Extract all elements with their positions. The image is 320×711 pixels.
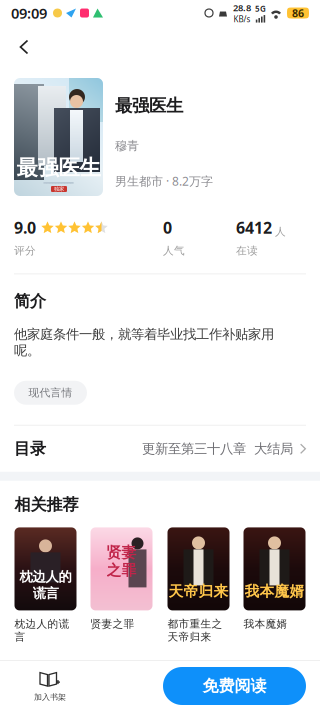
- button[interactable]: 加入书架: [10, 663, 90, 708]
- staticText: 我本魔婿: [243, 617, 287, 630]
- staticText: 最强医生: [115, 95, 183, 116]
- button[interactable]: Back: [7, 26, 41, 68]
- staticText: 相关推荐: [14, 495, 78, 514]
- staticText: 免费阅读: [202, 676, 266, 696]
- staticText: 我本魔婿: [244, 582, 304, 600]
- staticText: 评分: [14, 244, 36, 257]
- staticText: 枕边人的: [19, 569, 71, 585]
- staticText: 0: [163, 217, 172, 238]
- staticText: 更新至第三十八章 大结局: [142, 441, 293, 457]
- button[interactable]: 免费阅读: [163, 667, 306, 705]
- staticText: KB/s: [233, 14, 250, 24]
- staticText: 86: [292, 6, 304, 20]
- staticText: 男生都市 · 8.2万字: [115, 173, 213, 189]
- staticText: 6412: [236, 217, 272, 238]
- button[interactable]: 天帝归来: [167, 527, 229, 651]
- staticText: ▃▃▃▃▃▃▃▃▃▃: [43, 179, 73, 183]
- staticText: 谎言: [32, 585, 58, 601]
- staticText: 独家: [54, 186, 64, 192]
- button[interactable]: 枕边人的: [14, 527, 76, 651]
- staticText: 人: [275, 225, 286, 238]
- staticText: 现代言情: [28, 386, 72, 399]
- staticText: 他家庭条件一般，就等着毕业找工作补贴家用呢。: [14, 326, 274, 359]
- staticText: 5G: [255, 3, 266, 14]
- button[interactable]: 目录: [0, 426, 320, 472]
- staticText: 枕边人的谎言: [14, 617, 69, 644]
- staticText: 之罪: [106, 561, 136, 579]
- staticText: 加入书架: [34, 692, 66, 702]
- button[interactable]: 贤妻: [90, 527, 152, 651]
- staticText: 09:09: [11, 3, 47, 23]
- staticText: 28.8: [233, 1, 251, 14]
- staticText: 最强医生: [16, 155, 100, 181]
- staticText: 天帝归来: [168, 582, 228, 600]
- staticText: 都市重生之天帝归来: [167, 617, 222, 644]
- staticText: 贤妻: [106, 543, 136, 561]
- staticText: 在读: [236, 244, 258, 257]
- staticText: 穆青: [115, 138, 139, 153]
- staticText: 贤妻之罪: [90, 617, 134, 630]
- staticText: 简介: [14, 291, 46, 311]
- staticText: 目录: [14, 439, 46, 459]
- staticText: 人气: [163, 244, 185, 257]
- staticText: 9.0: [14, 217, 36, 238]
- button[interactable]: 我本魔婿: [243, 527, 305, 651]
